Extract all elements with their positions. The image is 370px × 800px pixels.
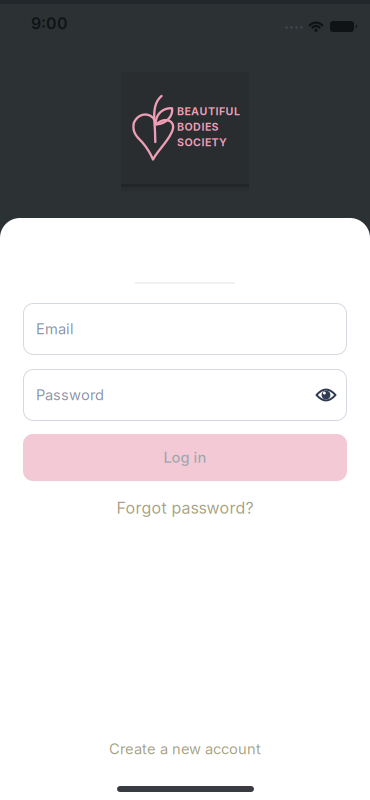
staticText: Forgot password? [116,499,253,517]
staticText: Email [36,320,74,338]
staticText: Create a new account [109,740,261,758]
button[interactable]: Forgot password? [85,496,285,520]
staticText: 9:00 [31,14,68,33]
button[interactable]: Show password [311,380,341,410]
staticText: SOCIETY [177,136,227,149]
button[interactable]: Log in [23,434,347,481]
staticText: BEAUTIFUL [177,105,240,118]
button[interactable]: Password [23,369,347,421]
staticText: Password [36,386,104,404]
button[interactable]: Email [23,303,347,355]
staticText: BODIES [177,121,218,133]
staticText: Log in [163,449,206,466]
button[interactable]: Create a new account [65,737,305,761]
